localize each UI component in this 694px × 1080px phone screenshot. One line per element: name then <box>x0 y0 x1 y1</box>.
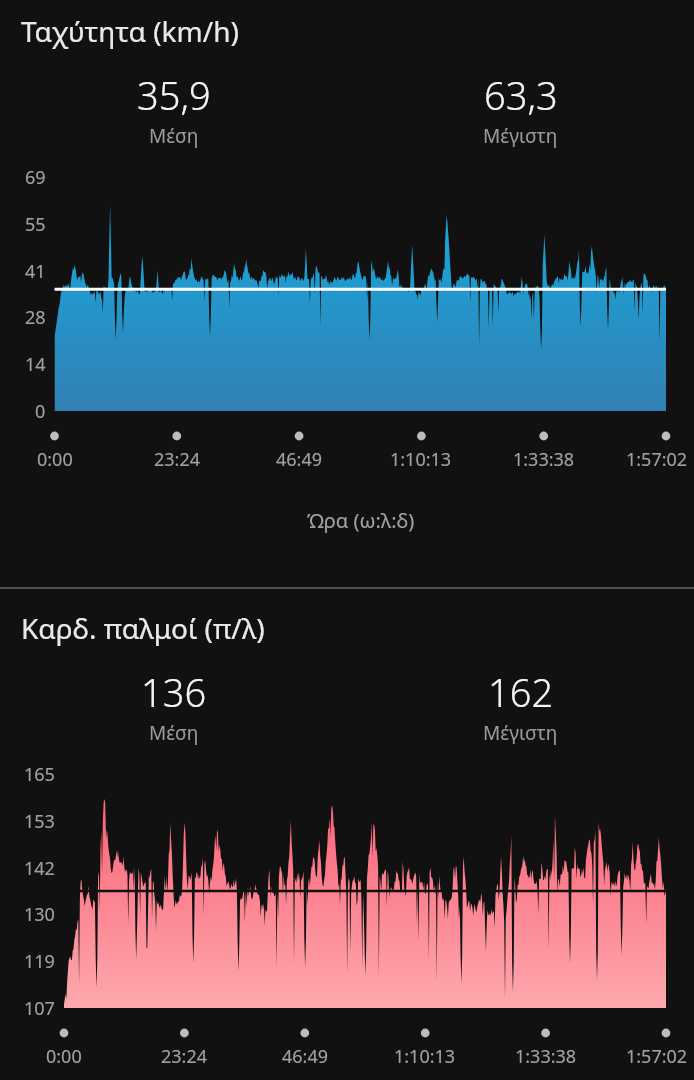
staticText: 0 <box>35 399 46 423</box>
staticText: 1:33:38 <box>515 1044 577 1068</box>
button[interactable]: 162 <box>347 666 694 746</box>
staticText: 46:49 <box>276 447 323 471</box>
staticText: 28 <box>25 305 46 329</box>
staticText: Ταχύτητα (km/h) <box>21 12 239 50</box>
staticText: 1:57:02 <box>626 447 688 471</box>
staticText: 23:24 <box>154 447 201 471</box>
button[interactable]: 35,9 <box>0 69 347 149</box>
staticText: 0:00 <box>37 447 73 471</box>
staticText: 165 <box>24 762 55 786</box>
staticText: 55 <box>25 212 46 236</box>
staticText: 142 <box>24 856 55 880</box>
staticText: Μέγιστη <box>483 720 558 746</box>
staticText: 46:49 <box>282 1044 329 1068</box>
staticText: 69 <box>25 165 46 189</box>
staticText: 23:24 <box>161 1044 208 1068</box>
staticText: Μέγιστη <box>483 123 558 149</box>
staticText: 119 <box>24 949 55 973</box>
staticText: Ώρα (ω:λ:δ) <box>307 507 415 533</box>
staticText: 35,9 <box>137 69 211 121</box>
staticText: 63,3 <box>484 69 558 121</box>
staticText: Μέση <box>149 123 199 149</box>
staticText: 1:10:13 <box>390 447 452 471</box>
staticText: Μέση <box>149 720 199 746</box>
staticText: 0:00 <box>46 1044 82 1068</box>
staticText: 1:33:38 <box>513 447 575 471</box>
staticText: 136 <box>141 666 207 718</box>
button[interactable]: 136 <box>0 666 347 746</box>
staticText: 130 <box>24 902 55 926</box>
staticText: Καρδ. παλμοί (π/λ) <box>21 609 265 647</box>
staticText: 153 <box>24 809 55 833</box>
button[interactable]: Καρδ. παλμοί (π/λ) <box>21 609 265 647</box>
staticText: 107 <box>24 996 55 1020</box>
button[interactable]: 63,3 <box>347 69 694 149</box>
staticText: 14 <box>25 352 46 376</box>
staticText: 1:10:13 <box>394 1044 456 1068</box>
staticText: 162 <box>488 666 554 718</box>
staticText: 1:57:02 <box>626 1044 688 1068</box>
staticText: 41 <box>25 259 46 283</box>
button[interactable]: Ταχύτητα (km/h) <box>21 12 239 50</box>
